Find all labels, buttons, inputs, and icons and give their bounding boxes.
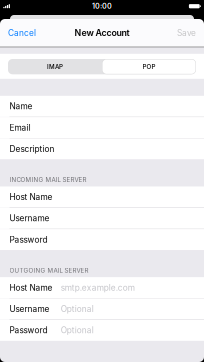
staticText: New Account [74,28,129,38]
button[interactable]: Host Name [0,277,204,298]
staticText: OUTGOING MAIL SERVER [9,267,88,274]
staticText: POP [142,63,155,70]
staticText: Description [9,144,54,154]
staticText: 10:00 [92,2,112,10]
staticText: Password [9,235,47,245]
staticText: Optional [61,304,94,314]
button[interactable]: Password [0,229,204,250]
button[interactable]: Save [171,19,204,47]
button[interactable]: Username [0,298,204,319]
staticText: Host Name [9,192,52,202]
staticText: Save [177,28,196,38]
staticText: Password [9,325,47,335]
staticText: Username [9,213,49,223]
button[interactable]: IMAP [8,59,102,74]
button[interactable]: Host Name [0,186,204,207]
staticText: Email [9,123,30,133]
staticText: INCOMING MAIL SERVER [9,176,86,183]
button[interactable]: Name [0,96,204,117]
button[interactable]: Email [0,117,204,138]
button[interactable]: Cancel [0,19,42,47]
button[interactable]: Password [0,320,204,341]
staticText: Host Name [9,283,52,293]
button[interactable]: Username [0,208,204,229]
staticText: smtp.example.com [61,283,135,293]
staticText: IMAP [47,63,63,70]
staticText: Name [9,101,32,111]
staticText: Optional [61,325,94,335]
button[interactable]: Description [0,138,204,159]
button[interactable]: POP [102,59,196,74]
staticText: Username [9,304,49,314]
staticText: Cancel [8,28,36,38]
